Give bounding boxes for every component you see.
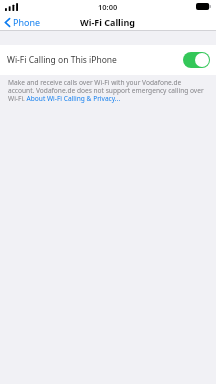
button[interactable]: Phone: [0, 13, 47, 31]
button[interactable]: Make and receive calls over Wi-Fi with y…: [0, 75, 216, 107]
staticText: Wi-Fi Calling: [80, 16, 136, 28]
staticText: Phone: [13, 16, 41, 28]
button[interactable]: Wi-Fi Calling on This iPhone: [0, 45, 216, 75]
staticText: Make and receive calls over Wi-Fi with y…: [8, 78, 208, 103]
staticText: Wi-Fi Calling on This iPhone: [7, 54, 183, 66]
button[interactable]: Wi-Fi Calling toggle, on: [183, 52, 210, 68]
staticText: 10:00: [98, 2, 118, 12]
